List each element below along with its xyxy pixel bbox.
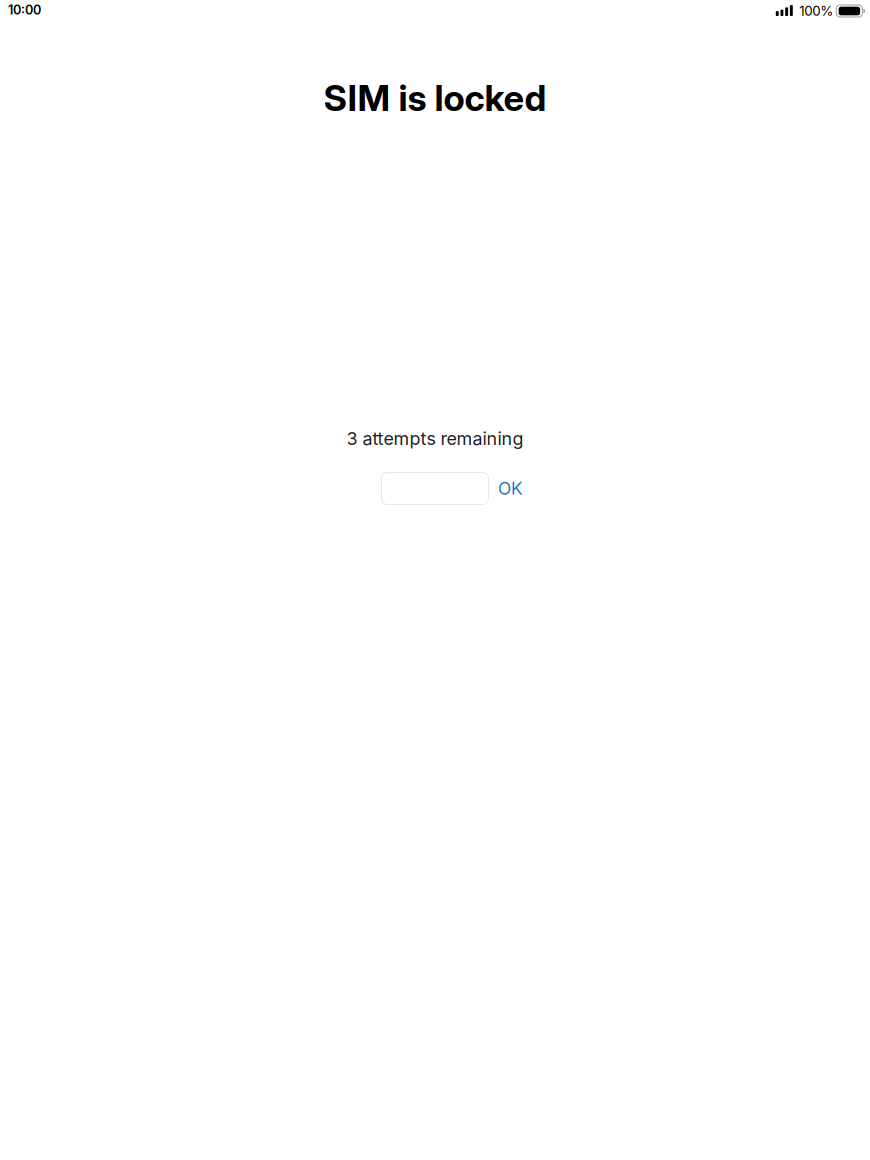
staticText: 100%	[799, 3, 833, 19]
staticText: 10:00	[8, 2, 41, 18]
staticText: OK	[498, 478, 523, 499]
button[interactable]: SIM PIN	[381, 472, 488, 504]
button[interactable]: OK	[492, 472, 528, 504]
staticText: 3 attempts remaining	[346, 428, 523, 449]
staticText: SIM is locked	[323, 76, 546, 120]
